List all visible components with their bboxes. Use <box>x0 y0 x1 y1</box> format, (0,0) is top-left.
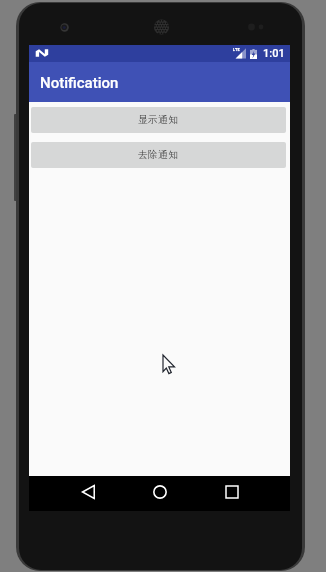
button[interactable]: Recent apps <box>210 474 254 509</box>
staticText: 显示通知 <box>138 114 179 126</box>
staticText: Notification <box>40 74 119 92</box>
staticText: 1:01 <box>263 47 285 60</box>
button[interactable]: 去除通知 <box>31 142 286 168</box>
button[interactable]: Home <box>138 474 182 509</box>
staticText: 去除通知 <box>138 149 179 161</box>
button[interactable]: Back <box>66 474 110 509</box>
button[interactable]: 显示通知 <box>31 107 286 133</box>
